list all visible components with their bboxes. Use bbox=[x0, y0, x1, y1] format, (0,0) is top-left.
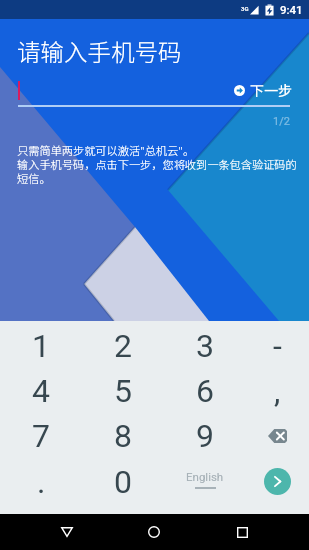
staticText: 9:41 bbox=[280, 3, 303, 16]
staticText: 下一步 bbox=[250, 80, 292, 100]
staticText: - bbox=[273, 327, 282, 365]
staticText: 9 bbox=[196, 417, 214, 455]
staticText: 5 bbox=[114, 372, 132, 410]
button[interactable]: 3 bbox=[164, 323, 246, 368]
button[interactable]: Recent apps bbox=[222, 514, 262, 550]
button[interactable]: Next bbox=[231, 77, 295, 103]
staticText: English bbox=[186, 470, 224, 483]
button[interactable]: 7 bbox=[0, 413, 82, 458]
button[interactable]: English bbox=[164, 459, 246, 504]
button[interactable]: - bbox=[246, 323, 309, 368]
other: Backspace bbox=[268, 429, 287, 443]
staticText: 只需简单两步就可以激活"总机云"。 输入手机号码，点击下一步，您将收到一条包含验… bbox=[17, 142, 297, 186]
button[interactable]: . bbox=[0, 459, 82, 504]
button[interactable]: , bbox=[246, 368, 309, 413]
staticText: 0 bbox=[114, 463, 132, 501]
staticText: , bbox=[274, 372, 281, 410]
button[interactable]: Go bbox=[246, 459, 309, 504]
button[interactable]: Backspace bbox=[246, 413, 309, 458]
button[interactable]: 5 bbox=[82, 368, 164, 413]
button[interactable]: 8 bbox=[82, 413, 164, 458]
button[interactable]: 6 bbox=[164, 368, 246, 413]
staticText: 3G bbox=[241, 5, 249, 12]
staticText: 4 bbox=[32, 372, 50, 410]
button[interactable]: Back bbox=[47, 514, 87, 550]
staticText: 3 bbox=[196, 327, 214, 365]
button[interactable]: 4 bbox=[0, 368, 82, 413]
staticText: 6 bbox=[196, 372, 214, 410]
button[interactable]: Home bbox=[134, 514, 174, 550]
button[interactable]: 0 bbox=[82, 459, 164, 504]
button[interactable]: 1 bbox=[0, 323, 82, 368]
staticText: 7 bbox=[32, 417, 50, 455]
staticText: 8 bbox=[114, 417, 132, 455]
staticText: 请输入手机号码 bbox=[17, 34, 182, 68]
button[interactable]: 9 bbox=[164, 413, 246, 458]
staticText: 2 bbox=[114, 327, 132, 365]
staticText: 1/2 bbox=[273, 115, 290, 128]
button[interactable]: 2 bbox=[82, 323, 164, 368]
staticText: 1 bbox=[32, 327, 50, 365]
button[interactable]: Go bbox=[264, 468, 291, 495]
other: Next bbox=[234, 85, 245, 96]
staticText: . bbox=[37, 463, 46, 501]
